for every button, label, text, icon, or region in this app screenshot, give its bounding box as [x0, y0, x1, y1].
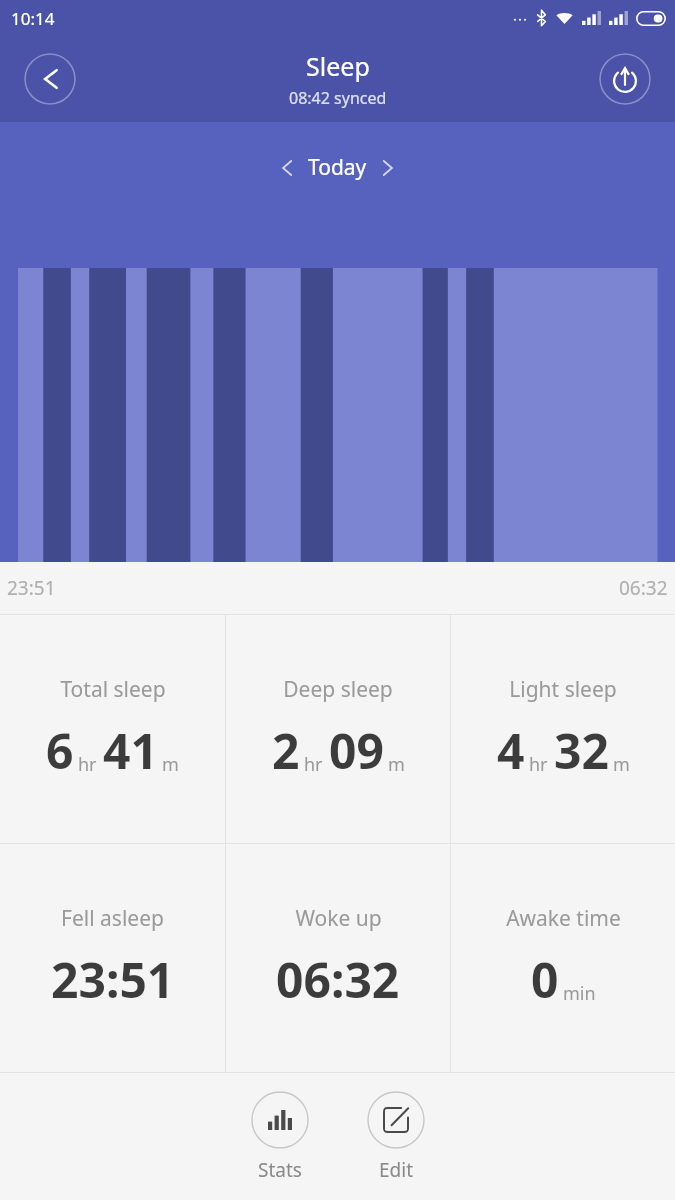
button[interactable]: Edit — [361, 1087, 431, 1187]
button[interactable]: Deep sleep — [226, 615, 450, 843]
staticText: Awake time — [506, 904, 621, 933]
staticText: Light sleep — [509, 675, 617, 704]
staticText: 10:14 — [11, 7, 55, 30]
staticText: 06:32 — [276, 947, 400, 1012]
staticText: m — [162, 752, 179, 777]
staticText: 09 — [329, 718, 384, 783]
staticText: Edit — [379, 1157, 414, 1183]
staticText: 06:32 — [619, 575, 668, 601]
staticText: Deep sleep — [283, 675, 393, 704]
button[interactable]: Sync — [599, 53, 651, 105]
staticText: hr — [78, 752, 97, 777]
staticText: hr — [304, 752, 323, 777]
staticText: 4 — [497, 718, 525, 783]
button[interactable]: Light sleep — [451, 615, 675, 843]
staticText: 2 — [272, 718, 300, 783]
button[interactable]: Today — [272, 149, 403, 186]
staticText: min — [563, 981, 596, 1006]
button[interactable]: Awake time — [451, 844, 675, 1072]
staticText: Fell asleep — [61, 904, 164, 933]
staticText: 08:42 synced — [289, 87, 387, 109]
button[interactable]: Total sleep — [0, 615, 225, 843]
staticText: 32 — [554, 718, 609, 783]
staticText: 23:51 — [51, 947, 175, 1012]
staticText: Woke up — [295, 904, 382, 933]
staticText: Sleep — [306, 49, 370, 83]
staticText: m — [388, 752, 405, 777]
staticText: 0 — [531, 947, 559, 1012]
staticText: Today — [308, 153, 367, 182]
button[interactable]: Stats — [245, 1087, 315, 1187]
button[interactable]: Back — [24, 53, 76, 105]
staticText: 41 — [103, 718, 158, 783]
staticText: Total sleep — [60, 675, 166, 704]
staticText: 6 — [46, 718, 74, 783]
staticText: Stats — [258, 1157, 302, 1183]
button[interactable]: Fell asleep — [0, 844, 225, 1072]
staticText: m — [613, 752, 630, 777]
button[interactable]: Woke up — [226, 844, 450, 1072]
staticText: 23:51 — [7, 575, 56, 601]
staticText: hr — [529, 752, 548, 777]
